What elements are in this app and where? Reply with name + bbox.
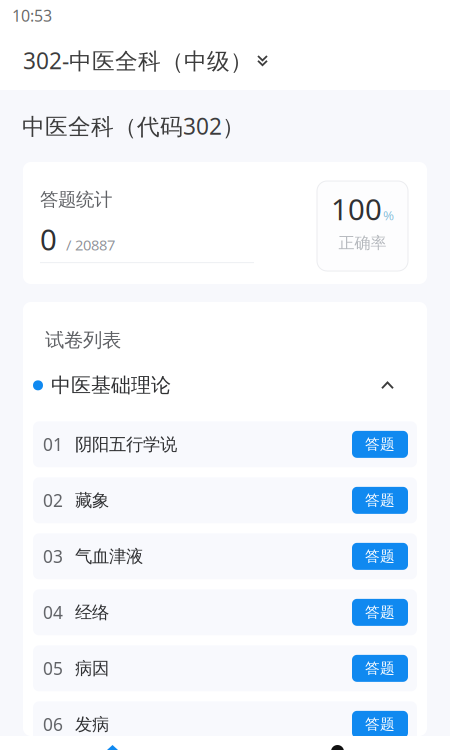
staticText: 病因 bbox=[75, 657, 109, 679]
staticText: 答题 bbox=[365, 547, 395, 566]
staticText: 阴阳五行学说 bbox=[75, 433, 177, 455]
button[interactable]: 302-中医全科（中级） bbox=[0, 31, 450, 90]
staticText: 10:53 bbox=[12, 5, 52, 26]
staticText: 中医基础理论 bbox=[51, 373, 171, 398]
staticText: 03 bbox=[43, 545, 63, 568]
staticText: 中医全科（代码302） bbox=[22, 111, 245, 141]
button[interactable]: 04 bbox=[33, 589, 417, 635]
staticText: 100 bbox=[331, 189, 382, 229]
staticText: 0 bbox=[40, 219, 57, 259]
staticText: 答题 bbox=[365, 491, 395, 510]
staticText: 答题 bbox=[365, 435, 395, 454]
staticText: 01 bbox=[43, 433, 63, 456]
staticText: 02 bbox=[43, 489, 63, 512]
staticText: % bbox=[383, 206, 394, 224]
button[interactable]: 02 bbox=[33, 477, 417, 523]
staticText: 气血津液 bbox=[75, 545, 143, 567]
button[interactable]: 03 bbox=[33, 533, 417, 579]
button[interactable]: 我的 bbox=[225, 736, 450, 750]
staticText: 正确率 bbox=[338, 233, 386, 253]
staticText: 答题统计 bbox=[40, 188, 112, 211]
button[interactable]: 06 bbox=[33, 701, 417, 747]
staticText: 06 bbox=[43, 713, 63, 736]
staticText: 答题 bbox=[365, 603, 395, 622]
button[interactable]: 05 bbox=[33, 645, 417, 691]
staticText: 藏象 bbox=[75, 489, 109, 511]
button[interactable]: 中医基础理论 bbox=[23, 374, 427, 396]
staticText: 05 bbox=[43, 657, 63, 680]
staticText: 答题 bbox=[365, 659, 395, 678]
staticText: 发病 bbox=[75, 713, 109, 735]
staticText: 试卷列表 bbox=[45, 328, 121, 352]
staticText: 04 bbox=[43, 601, 63, 624]
button[interactable]: 首页 bbox=[0, 736, 225, 750]
staticText: 302-中医全科（中级） bbox=[23, 45, 253, 76]
staticText: / 20887 bbox=[66, 235, 115, 255]
staticText: 经络 bbox=[75, 601, 109, 623]
staticText: 答题 bbox=[365, 715, 395, 734]
button[interactable]: 01 bbox=[33, 421, 417, 467]
